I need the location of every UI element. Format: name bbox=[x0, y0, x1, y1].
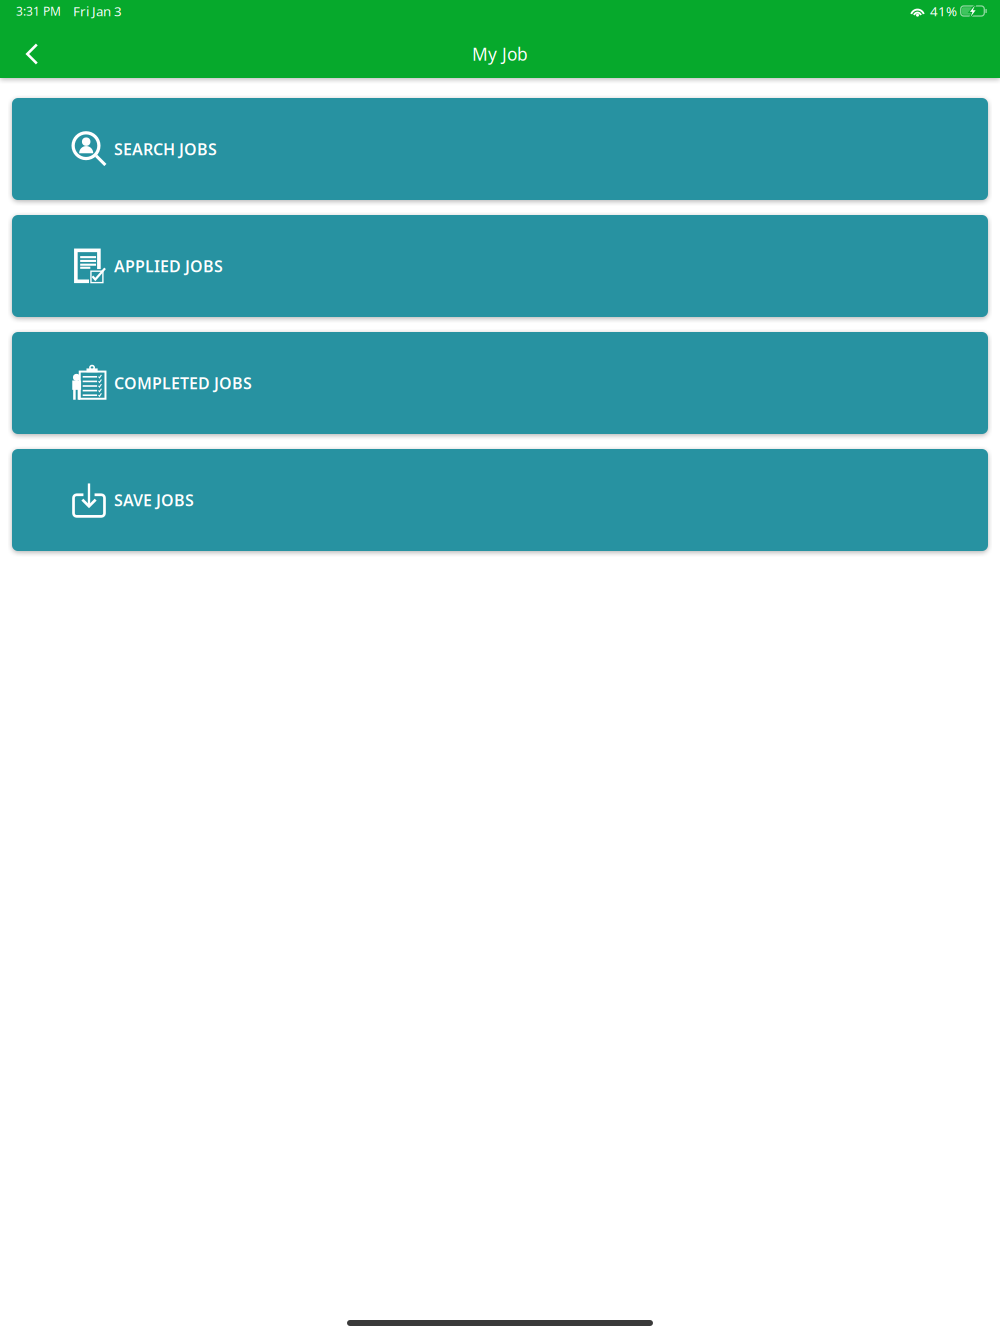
staticText: SAVE JOBS bbox=[114, 489, 194, 511]
button[interactable]: APPLIED JOBS bbox=[12, 215, 988, 317]
staticText: SEARCH JOBS bbox=[114, 138, 217, 160]
staticText: Fri Jan 3 bbox=[73, 2, 122, 20]
staticText: 3:31 PM bbox=[16, 3, 61, 19]
staticText: My Job bbox=[472, 42, 528, 65]
button[interactable]: COMPLETED JOBS bbox=[12, 332, 988, 434]
staticText: 41% bbox=[930, 2, 957, 20]
button[interactable]: SEARCH JOBS bbox=[12, 98, 988, 200]
button[interactable]: SAVE JOBS bbox=[12, 449, 988, 551]
button[interactable]: Back bbox=[0, 30, 58, 78]
staticText: COMPLETED JOBS bbox=[114, 372, 252, 394]
staticText: APPLIED JOBS bbox=[114, 255, 223, 277]
